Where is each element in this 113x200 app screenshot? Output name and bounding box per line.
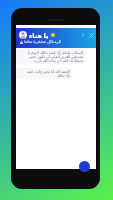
staticText: الرسائل مشفرة تماما bbox=[24, 39, 62, 45]
button[interactable]: Contact photo bbox=[19, 31, 27, 39]
button[interactable]: السلام عليكم 😊 كيف حالك اليوم يا صديقي ا… bbox=[16, 49, 85, 64]
button[interactable]: New message bbox=[79, 161, 90, 172]
button[interactable]: Voice call bbox=[79, 31, 87, 39]
staticText: يا هناء bbox=[29, 31, 49, 40]
staticText: الحمد لله انا بخير وانت كيف حالك 😊 bbox=[18, 69, 70, 78]
button[interactable]: الحمد لله انا بخير وانت كيف حالك 😊 bbox=[16, 68, 72, 79]
staticText: السلام عليكم 😊 كيف حالك اليوم يا صديقي ا… bbox=[18, 50, 83, 63]
button[interactable]: Video call bbox=[87, 31, 95, 39]
